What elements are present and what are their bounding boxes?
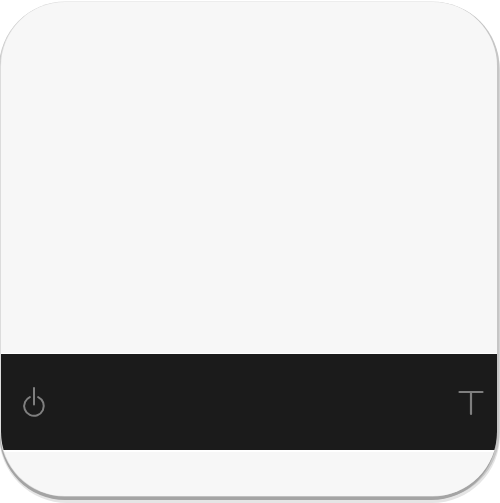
button[interactable]: Power <box>11 380 56 425</box>
button[interactable]: Text <box>448 380 493 425</box>
